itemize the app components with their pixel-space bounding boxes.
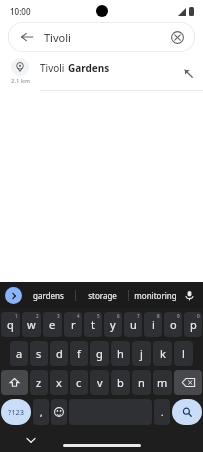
button[interactable]: gardens	[22, 290, 75, 301]
staticText: ?123	[8, 407, 25, 417]
staticText: 2	[36, 313, 39, 319]
button[interactable]: w	[22, 312, 41, 337]
staticText: 1	[15, 313, 18, 319]
button[interactable]: g	[90, 341, 109, 366]
staticText: 2.1 km	[11, 77, 30, 85]
staticText: g	[96, 346, 103, 361]
button[interactable]: j	[132, 341, 151, 366]
staticText: f	[77, 346, 81, 361]
button[interactable]: 2.1 km	[0, 56, 203, 90]
staticText: 5	[97, 313, 100, 319]
staticText: w	[27, 317, 36, 332]
staticText: r	[71, 317, 76, 332]
staticText: 8	[157, 313, 160, 319]
staticText: Tivoli	[40, 61, 68, 75]
staticText: n	[138, 375, 145, 390]
button[interactable]: Back	[8, 22, 195, 52]
button[interactable]: m	[153, 370, 172, 395]
button[interactable]: c	[70, 370, 88, 395]
button[interactable]: Fill in query	[173, 56, 203, 90]
button[interactable]: q	[1, 312, 20, 337]
button[interactable]: Shift	[1, 370, 28, 395]
button[interactable]: p	[184, 312, 202, 337]
staticText: 4	[77, 313, 80, 319]
button[interactable]: z	[30, 370, 48, 395]
button[interactable]: Backspace	[174, 370, 202, 395]
staticText: 7	[137, 313, 140, 319]
staticText: 9	[177, 313, 180, 319]
staticText: d	[56, 346, 63, 361]
staticText: Tivoli	[44, 30, 71, 45]
staticText: 0	[197, 313, 200, 319]
staticText: m	[157, 375, 168, 390]
staticText: 3	[57, 313, 60, 319]
staticText: 6	[117, 313, 120, 319]
staticText: gardens	[33, 290, 64, 301]
staticText: v	[97, 375, 103, 390]
staticText: .	[161, 406, 164, 418]
staticText: h	[117, 346, 124, 361]
button[interactable]: o	[164, 312, 182, 337]
staticText: a	[16, 346, 23, 361]
button[interactable]: v	[90, 370, 109, 395]
button[interactable]: Emoji	[51, 399, 67, 425]
staticText: z	[36, 375, 42, 390]
staticText: i	[152, 317, 155, 332]
staticText: c	[76, 375, 82, 390]
button[interactable]: More suggestions	[5, 287, 22, 304]
button[interactable]: e	[43, 312, 62, 337]
staticText: q	[7, 317, 14, 332]
button[interactable]: r	[64, 312, 82, 337]
staticText: s	[36, 346, 42, 361]
button[interactable]: u	[124, 312, 142, 337]
staticText: t	[91, 317, 95, 332]
button[interactable]: b	[111, 370, 130, 395]
button[interactable]: t	[84, 312, 102, 337]
staticText: b	[117, 375, 124, 390]
staticText: monitoring	[134, 290, 177, 301]
button[interactable]: Back	[18, 28, 36, 46]
staticText: p	[190, 317, 197, 332]
staticText: storage	[88, 290, 117, 301]
button[interactable]: monitoring	[129, 290, 181, 301]
button[interactable]: k	[153, 341, 172, 366]
button[interactable]: h	[111, 341, 130, 366]
staticText: o	[170, 317, 177, 332]
button[interactable]: l	[174, 341, 193, 366]
button[interactable]: ,	[33, 399, 49, 425]
button[interactable]: .	[154, 399, 170, 425]
staticText: Gardens	[68, 61, 110, 75]
staticText: l	[182, 346, 185, 361]
staticText: e	[49, 317, 56, 332]
button[interactable]: y	[104, 312, 122, 337]
button[interactable]: a	[10, 341, 28, 366]
button[interactable]: Hide keyboard	[24, 433, 38, 447]
staticText: k	[160, 346, 166, 361]
staticText: y	[110, 317, 116, 332]
staticText: 10:00	[10, 6, 31, 17]
staticText: u	[130, 317, 137, 332]
button[interactable]: n	[132, 370, 151, 395]
button[interactable]: ?123	[1, 399, 31, 425]
button[interactable]: storage	[76, 290, 128, 301]
button[interactable]: f	[70, 341, 88, 366]
button[interactable]: x	[50, 370, 68, 395]
button[interactable]: s	[30, 341, 48, 366]
button[interactable]: d	[50, 341, 68, 366]
staticText: ,	[40, 406, 43, 418]
staticText: j	[140, 346, 143, 361]
button[interactable]: i	[144, 312, 162, 337]
button[interactable]: Search	[172, 399, 202, 425]
button[interactable]: Voice input	[181, 287, 198, 304]
staticText: x	[56, 375, 62, 390]
button[interactable]: Clear search	[169, 29, 185, 45]
